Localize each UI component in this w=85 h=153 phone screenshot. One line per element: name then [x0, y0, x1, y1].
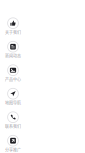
- button[interactable]: 联系我们: [1, 111, 25, 135]
- button[interactable]: 关于我们: [1, 17, 25, 41]
- button[interactable]: 新闻动态: [1, 41, 25, 64]
- button[interactable]: 地图导航: [1, 88, 25, 111]
- staticText: 产品中心: [5, 77, 21, 82]
- staticText: 地图导航: [5, 100, 21, 106]
- staticText: 新闻动态: [5, 53, 21, 59]
- staticText: 关于我们: [5, 30, 21, 35]
- staticText: 联系我们: [5, 124, 21, 129]
- staticText: 分享推广: [5, 147, 21, 153]
- button[interactable]: 产品中心: [1, 64, 25, 88]
- button[interactable]: 分享推广: [1, 135, 25, 153]
